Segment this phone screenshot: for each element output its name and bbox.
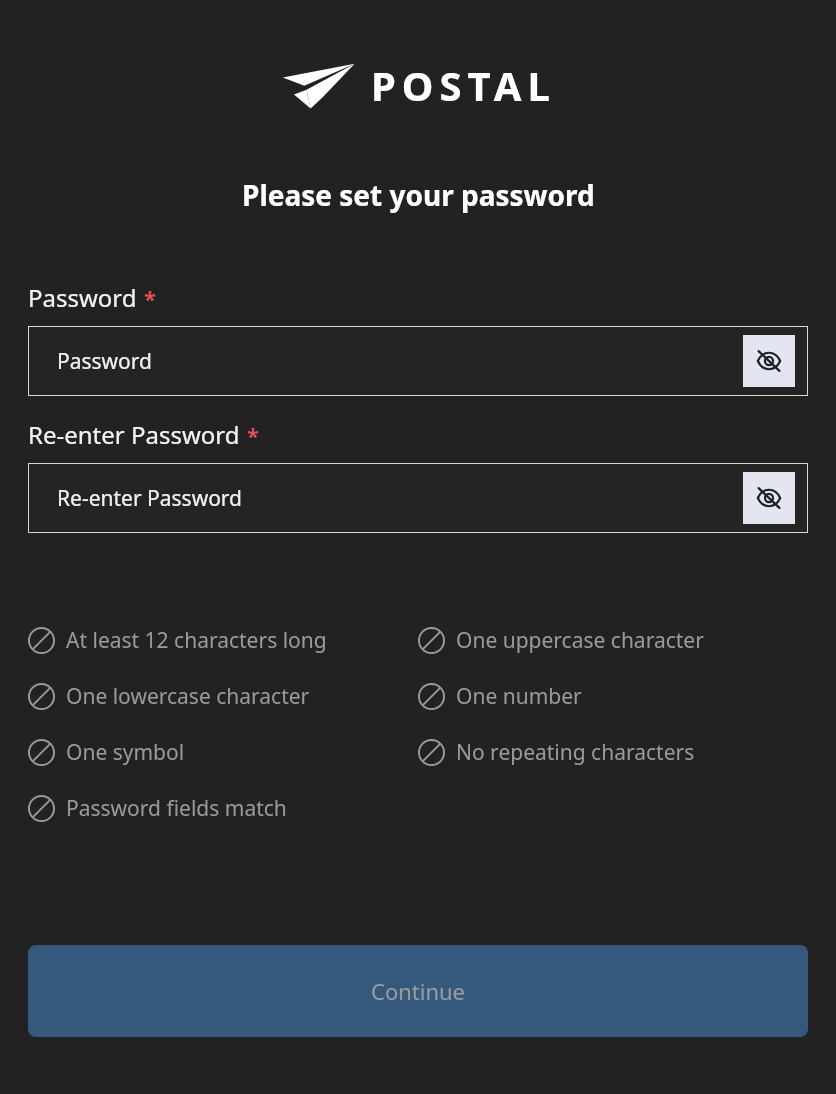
- staticText: Re-enter Password: [28, 418, 240, 451]
- staticText: At least 12 characters long: [66, 626, 327, 655]
- staticText: *: [144, 283, 156, 313]
- staticText: One lowercase character: [66, 682, 310, 711]
- button[interactable]: Continue: [28, 945, 808, 1037]
- staticText: POSTAL: [371, 58, 556, 112]
- staticText: Password fields match: [66, 794, 287, 823]
- staticText: Password: [28, 281, 137, 314]
- staticText: Re-enter Password: [57, 484, 743, 513]
- staticText: *: [247, 420, 259, 450]
- button[interactable]: One uppercase character: [418, 623, 704, 657]
- button[interactable]: Password fields match: [28, 791, 287, 825]
- button[interactable]: Show password: [743, 335, 795, 387]
- staticText: One uppercase character: [456, 626, 704, 655]
- staticText: One number: [456, 682, 582, 711]
- button[interactable]: Password: [28, 326, 808, 396]
- button[interactable]: Re-enter Password: [28, 463, 808, 533]
- button[interactable]: One symbol: [28, 735, 185, 769]
- button[interactable]: One lowercase character: [28, 679, 310, 713]
- button[interactable]: One number: [418, 679, 582, 713]
- staticText: Continue: [371, 976, 466, 1006]
- button[interactable]: At least 12 characters long: [28, 623, 327, 657]
- staticText: Please set your password: [242, 176, 595, 214]
- button[interactable]: Show re-entered password: [743, 472, 795, 524]
- button[interactable]: No repeating characters: [418, 735, 695, 769]
- staticText: Password: [57, 347, 743, 376]
- staticText: No repeating characters: [456, 738, 695, 767]
- staticText: One symbol: [66, 738, 185, 767]
